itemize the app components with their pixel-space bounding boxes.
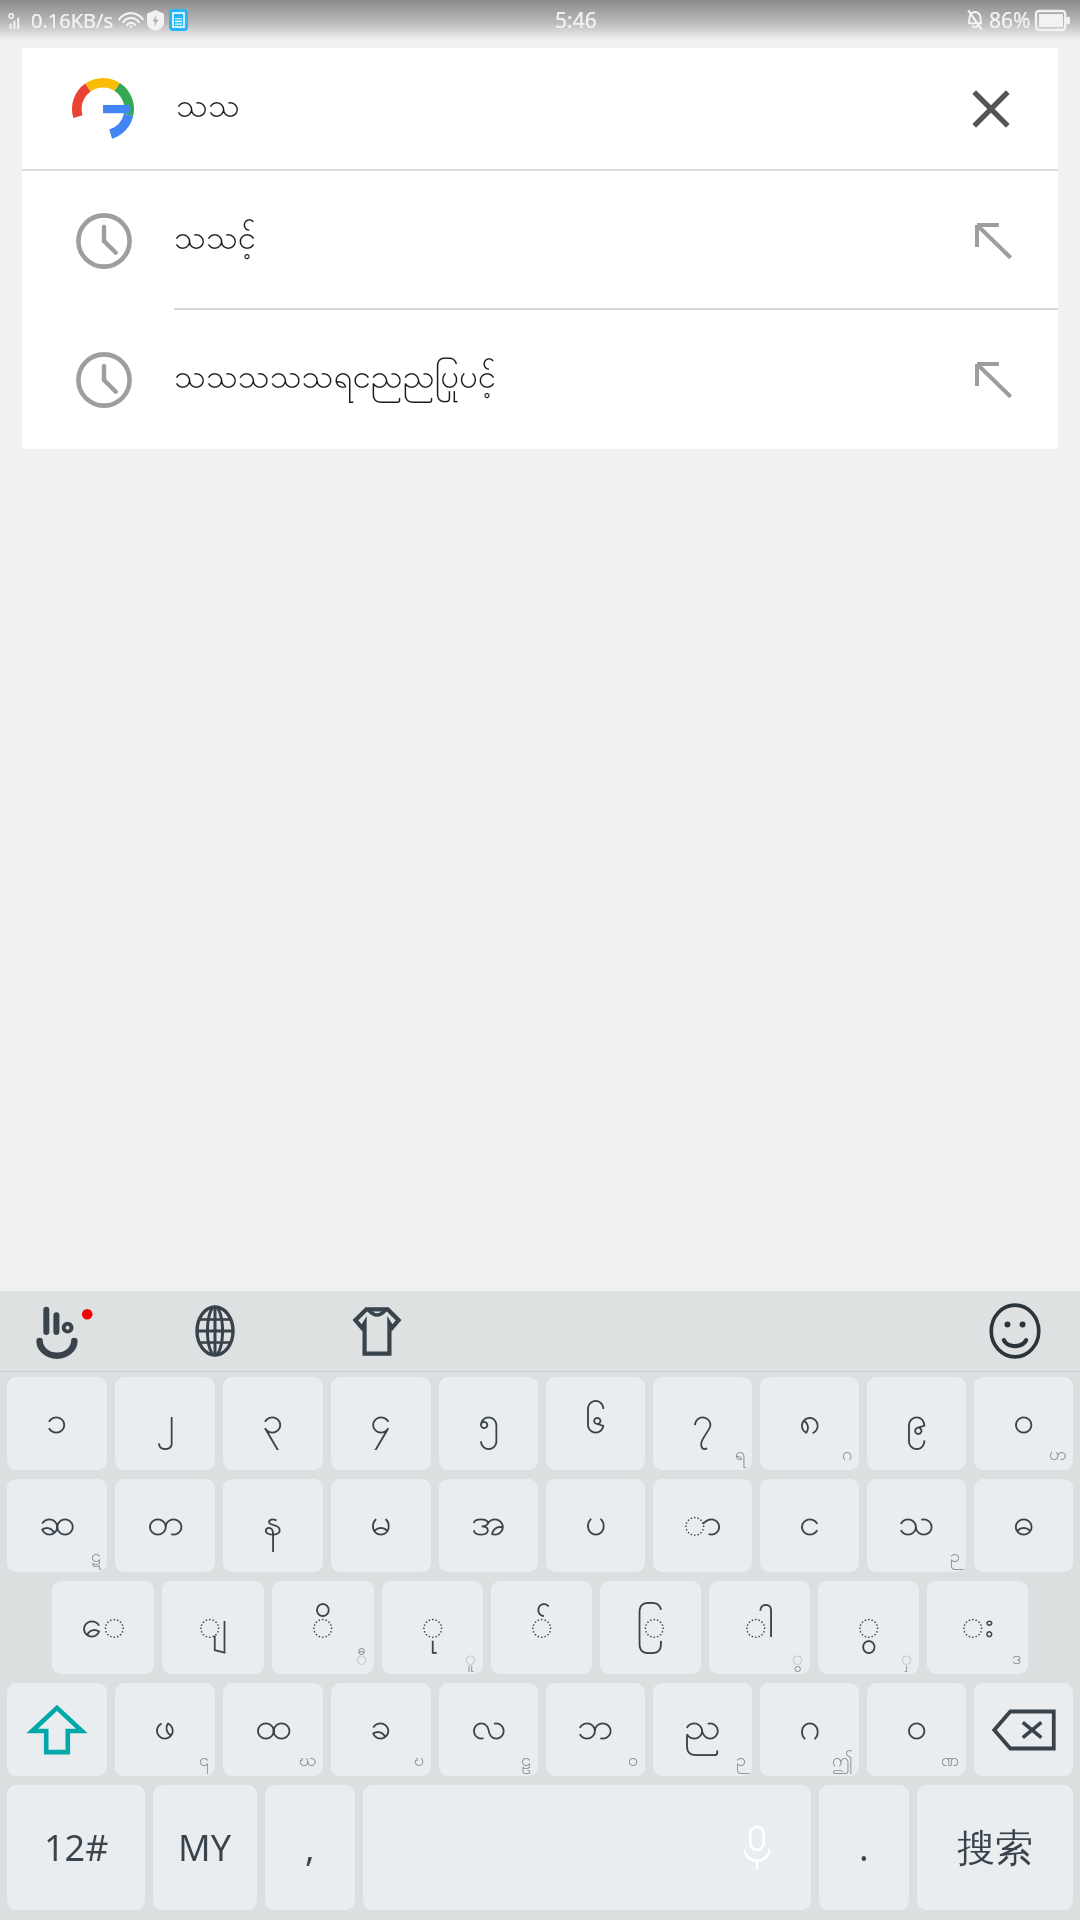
staticText: ဂ xyxy=(842,1442,853,1469)
button[interactable]: ် xyxy=(491,1581,592,1674)
staticText: ပ xyxy=(585,1498,607,1554)
button[interactable]: Themes xyxy=(344,1298,410,1364)
staticText: MY xyxy=(178,1823,232,1872)
button[interactable]: Insert suggestion xyxy=(964,351,1022,409)
staticText: ဃ xyxy=(299,1748,317,1775)
staticText: ၎ xyxy=(199,1748,209,1775)
button[interactable]: လ xyxy=(439,1683,538,1776)
staticText: င xyxy=(799,1498,821,1554)
button[interactable]: ွ xyxy=(818,1581,919,1674)
button[interactable]: Clear query xyxy=(960,78,1022,140)
button[interactable]: န xyxy=(223,1479,323,1572)
button[interactable]: ၆ xyxy=(546,1377,645,1470)
button[interactable]: ဖ xyxy=(115,1683,215,1776)
staticText: ိ xyxy=(311,1600,335,1656)
button[interactable]: TouchPal menu xyxy=(26,1295,98,1367)
button[interactable]: မ xyxy=(331,1479,431,1572)
button[interactable]: အ xyxy=(439,1479,538,1572)
staticText: ူ xyxy=(465,1646,477,1673)
button[interactable]: Change language xyxy=(182,1298,248,1364)
button[interactable]: ြ xyxy=(600,1581,701,1674)
staticText: ွ xyxy=(792,1646,804,1673)
staticText: ဎ xyxy=(414,1748,425,1775)
button[interactable]: ခ xyxy=(331,1683,431,1776)
staticText: ခ xyxy=(370,1702,392,1758)
staticText: ဆ xyxy=(39,1498,76,1554)
button[interactable]: Shift xyxy=(7,1683,107,1776)
button[interactable]: 搜索 xyxy=(917,1785,1073,1910)
button[interactable]: း xyxy=(927,1581,1028,1674)
staticText: ွ xyxy=(857,1600,881,1656)
staticText: . xyxy=(859,1823,869,1872)
staticText: 86% xyxy=(989,6,1031,35)
staticText: 5:46 xyxy=(555,6,597,35)
staticText: ဠ xyxy=(521,1748,532,1775)
button[interactable]: Emoji xyxy=(980,1296,1050,1366)
button[interactable]: သသင့် xyxy=(22,171,1058,310)
staticText: ၈ xyxy=(799,1396,821,1452)
staticText: း xyxy=(961,1600,995,1656)
staticText: 12# xyxy=(44,1823,109,1872)
staticText: ြ xyxy=(636,1600,666,1656)
staticText: ၉ xyxy=(906,1396,928,1452)
staticText: ၃ xyxy=(262,1396,284,1452)
button[interactable]: ဘ xyxy=(546,1683,645,1776)
staticText: ဝ xyxy=(906,1702,928,1758)
button[interactable]: ျ xyxy=(162,1581,264,1674)
button[interactable]: ဝ xyxy=(867,1683,966,1776)
button[interactable]: . xyxy=(819,1785,909,1910)
staticText: ဤ xyxy=(832,1748,853,1775)
button[interactable]: ဆ xyxy=(7,1479,107,1572)
staticText: ဏ xyxy=(941,1748,960,1775)
staticText: ျ xyxy=(198,1600,228,1656)
staticText: သ xyxy=(898,1498,935,1554)
button[interactable]: ဓ xyxy=(974,1479,1073,1572)
staticText: ၅ xyxy=(478,1396,500,1452)
button[interactable]: ၉ xyxy=(867,1377,966,1470)
staticText: ု xyxy=(421,1600,445,1656)
button[interactable]: ၈ xyxy=(760,1377,859,1470)
staticText: ည xyxy=(684,1702,721,1758)
button[interactable]: ါ xyxy=(709,1581,810,1674)
button[interactable]: ၃ xyxy=(223,1377,323,1470)
staticText: ၂ xyxy=(156,1396,175,1452)
button[interactable]: MY xyxy=(153,1785,257,1910)
button[interactable]: သသသသသရငညညပြုပင့် xyxy=(22,310,1058,449)
button[interactable]: ည xyxy=(653,1683,752,1776)
staticText: ဝ xyxy=(628,1748,639,1775)
button[interactable]: ိ xyxy=(272,1581,374,1674)
staticText: ဟ xyxy=(1049,1442,1067,1469)
button[interactable]: တ xyxy=(115,1479,215,1572)
staticText: ၆ xyxy=(585,1396,607,1452)
button[interactable]: ၁ xyxy=(7,1377,107,1470)
staticText: ရ xyxy=(735,1442,746,1469)
staticText: ီ xyxy=(356,1646,368,1673)
button[interactable]: ၇ xyxy=(653,1377,752,1470)
staticText: ှ xyxy=(901,1646,913,1673)
button[interactable]: Insert suggestion xyxy=(964,212,1022,270)
button[interactable]: ု xyxy=(382,1581,483,1674)
button[interactable]: 12# xyxy=(7,1785,145,1910)
button[interactable]: ထ xyxy=(223,1683,323,1776)
button[interactable]: ၂ xyxy=(115,1377,215,1470)
button[interactable]: ၅ xyxy=(439,1377,538,1470)
button[interactable]: ာ xyxy=(653,1479,752,1572)
button[interactable]: Backspace xyxy=(974,1683,1073,1776)
staticText: ါ xyxy=(744,1600,775,1656)
staticText: ၀ xyxy=(1013,1396,1035,1452)
button[interactable]: သ xyxy=(867,1479,966,1572)
staticText: သသသသသရငညညပြုပင့် xyxy=(174,355,497,404)
button[interactable]: ဂ xyxy=(760,1683,859,1776)
button[interactable]: ၀ xyxy=(974,1377,1073,1470)
button[interactable]: သသ xyxy=(22,48,1058,169)
button[interactable]: ၄ xyxy=(331,1377,431,1470)
button[interactable]: , xyxy=(265,1785,355,1910)
staticText: ဒ xyxy=(1012,1646,1022,1673)
button[interactable]: ပ xyxy=(546,1479,645,1572)
staticText: 搜索 xyxy=(957,1824,1033,1872)
button[interactable]: ေ xyxy=(52,1581,154,1674)
button[interactable]: င xyxy=(760,1479,859,1572)
staticText: ဂ xyxy=(799,1702,821,1758)
staticText: မ xyxy=(370,1498,392,1554)
